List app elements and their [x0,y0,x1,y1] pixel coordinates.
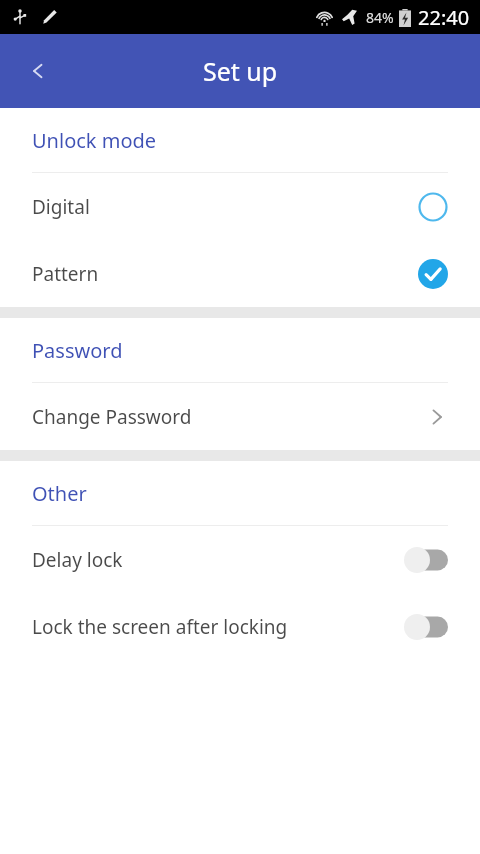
staticText: Pattern [32,261,418,287]
staticText: Other [32,480,87,507]
button[interactable]: Pattern [0,240,480,307]
staticText: Set up [203,54,278,88]
staticText: Digital [32,194,418,220]
staticText: Lock the screen after locking [32,614,404,640]
button[interactable]: Digital [0,173,480,240]
button[interactable]: Toggle [404,547,448,573]
button[interactable]: Back [16,49,60,93]
button[interactable]: Change Password [0,383,480,450]
staticText: Change Password [32,404,426,430]
staticText: Password [32,337,123,364]
staticText: 22:40 [418,4,470,31]
button[interactable]: Lock the screen after locking [0,593,480,660]
button[interactable]: Delay lock [0,526,480,593]
staticText: 84% [366,8,394,27]
staticText: Delay lock [32,547,404,573]
button[interactable]: Toggle [404,614,448,640]
staticText: Unlock mode [32,127,157,154]
